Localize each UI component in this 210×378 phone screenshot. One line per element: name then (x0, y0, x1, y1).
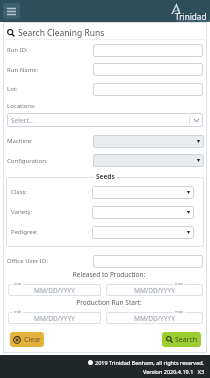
button[interactable]: Locations select (7, 113, 203, 127)
button[interactable]: Dropdown (92, 226, 194, 239)
staticText: Machine: (7, 137, 33, 145)
button[interactable]: Menu (3, 3, 20, 19)
staticText: Select... (11, 116, 35, 125)
button[interactable]: Text field (93, 63, 203, 76)
staticText: Configuration: (7, 157, 48, 165)
staticText: Seeds • Beans • Ingredients (177, 19, 210, 23)
button[interactable]: Dropdown (93, 154, 204, 167)
button[interactable]: Dropdown (93, 135, 204, 148)
staticText: Run Name: (7, 66, 39, 74)
staticText: Pedigree: (11, 228, 38, 236)
button[interactable]: Date max (106, 312, 203, 324)
staticText: max (175, 281, 184, 286)
staticText: min (14, 281, 22, 286)
staticText: Run ID: (7, 46, 28, 54)
staticText: MM/DD/YYYY (134, 286, 175, 295)
button[interactable]: Search (162, 332, 201, 347)
staticText: Variety: (11, 208, 33, 216)
button[interactable]: Text field (93, 255, 203, 268)
staticText: Class: (11, 188, 28, 196)
button[interactable]: Date max (106, 284, 203, 296)
staticText: Locations: (7, 102, 36, 110)
staticText: MM/DD/YYYY (34, 286, 75, 295)
staticText: min (14, 309, 22, 314)
button[interactable]: Text field (93, 44, 203, 57)
staticText: Search Cleaning Runs (18, 27, 105, 39)
staticText: max (175, 309, 184, 314)
button[interactable]: Text field (93, 83, 203, 96)
button[interactable]: Search Cleaning Runs (7, 27, 105, 39)
button[interactable]: Dropdown (92, 206, 194, 219)
staticText: Production Run Start: (8, 298, 210, 307)
staticText: Clear (24, 335, 41, 345)
button[interactable]: Dropdown (92, 186, 194, 199)
staticText: MM/DD/YYYY (134, 314, 175, 323)
staticText: Search (175, 335, 198, 345)
staticText: Seeds (96, 172, 115, 181)
staticText: Lot: (7, 85, 18, 93)
staticText: MM/DD/YYYY (34, 314, 75, 323)
staticText: Version 2020.4.19.1 X3 (143, 368, 205, 375)
staticText: Trinidad (175, 11, 207, 22)
button[interactable]: Date min (8, 312, 101, 324)
button[interactable]: Date min (8, 284, 101, 296)
button[interactable]: Clear (10, 332, 44, 347)
staticText: Office User ID: (7, 257, 48, 265)
staticText: Released to Production: (8, 270, 210, 279)
staticText: 2019 Trinidad Benham, all rights reserve… (95, 359, 205, 366)
